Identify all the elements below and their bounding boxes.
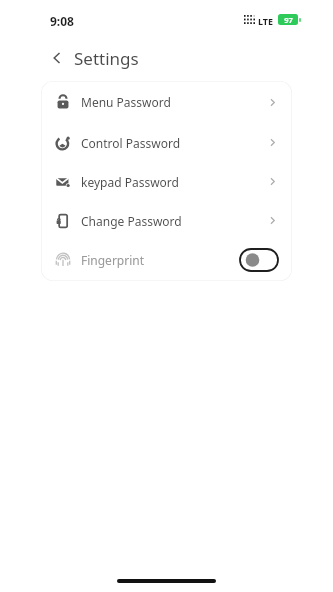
button[interactable]: Change Password: [41, 201, 292, 240]
button[interactable]: Back: [44, 45, 70, 71]
button[interactable]: Fingerprint toggle: [240, 249, 278, 271]
button[interactable]: Menu Password: [41, 81, 292, 123]
staticText: LTE: [258, 15, 274, 27]
staticText: Control Password: [81, 135, 181, 151]
button[interactable]: keypad Password: [41, 162, 292, 201]
staticText: 9:08: [50, 13, 74, 29]
staticText: Change Password: [81, 213, 182, 229]
staticText: keypad Password: [81, 174, 179, 190]
staticText: Settings: [74, 47, 139, 70]
staticText: 97: [284, 15, 293, 25]
staticText: Fingerprint: [81, 252, 145, 268]
staticText: Menu Password: [81, 94, 171, 110]
button[interactable]: Fingerprint: [41, 240, 292, 279]
button[interactable]: Control Password: [41, 123, 292, 162]
